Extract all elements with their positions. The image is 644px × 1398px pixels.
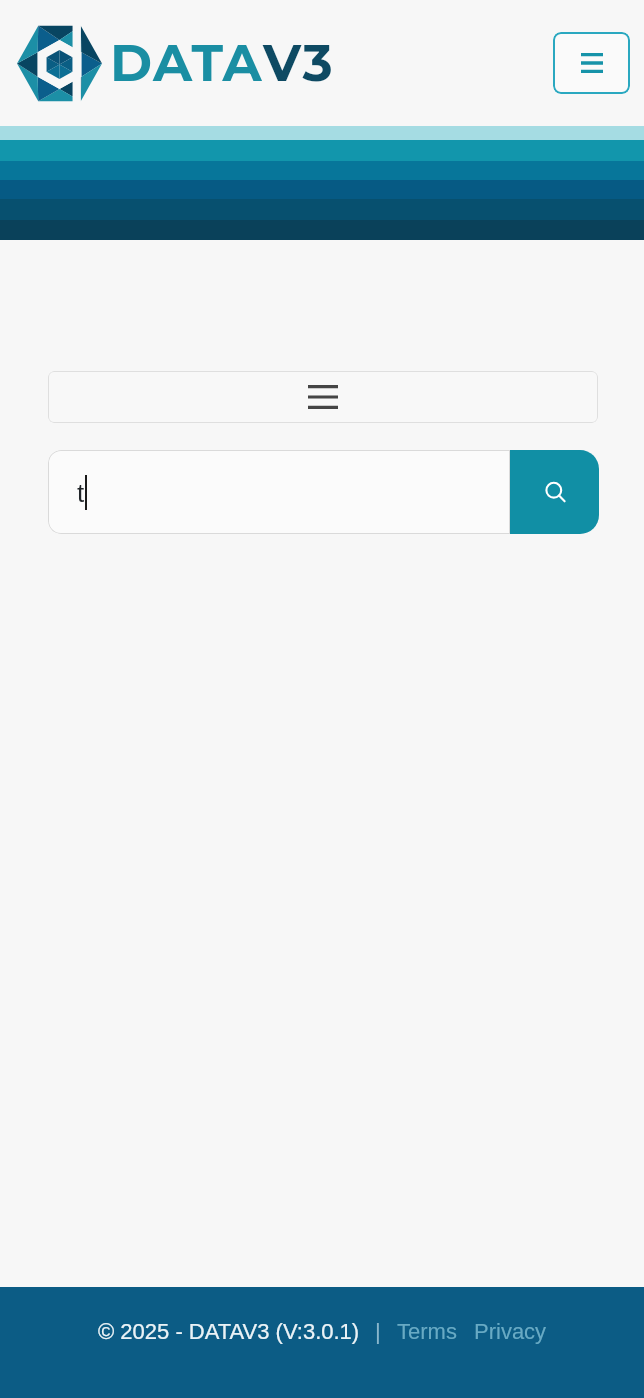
staticText: | [375, 1319, 381, 1344]
button[interactable]: Toggle navigation [48, 371, 598, 423]
button[interactable]: Terms [397, 1319, 457, 1344]
staticText: Privacy [474, 1319, 547, 1344]
staticText: V3 [263, 32, 335, 94]
button[interactable]: t [48, 450, 510, 534]
button[interactable]: Privacy [474, 1319, 547, 1344]
button[interactable]: Menu [553, 32, 630, 94]
staticText: t [77, 478, 85, 507]
staticText: DATA [110, 32, 263, 94]
button[interactable]: Search [510, 450, 599, 534]
staticText: Terms [397, 1319, 457, 1344]
staticText: © 2025 - DATAV3 (V:3.0.1) [98, 1319, 360, 1344]
